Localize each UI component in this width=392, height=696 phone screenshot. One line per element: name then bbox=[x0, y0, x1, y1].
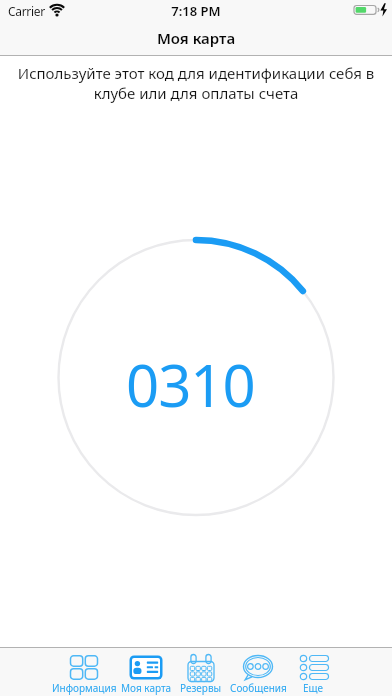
staticText: Используйте этот код для идентификации с… bbox=[0, 63, 392, 103]
button[interactable]: Информация bbox=[48, 651, 120, 695]
button[interactable]: Моя карта bbox=[110, 651, 182, 695]
staticText: Моя карта bbox=[0, 28, 392, 48]
staticText: Carrier bbox=[8, 3, 45, 19]
staticText: Моя карта bbox=[121, 681, 172, 695]
button[interactable]: Еще bbox=[277, 651, 349, 695]
staticText: Информация bbox=[52, 681, 117, 695]
staticText: Резервы bbox=[180, 681, 222, 695]
button[interactable]: Сообщения bbox=[222, 651, 294, 695]
staticText: Сообщения bbox=[230, 681, 287, 695]
staticText: Еще bbox=[303, 681, 324, 695]
staticText: 7:18 PM bbox=[0, 2, 392, 20]
staticText: 0310 bbox=[126, 345, 255, 423]
button[interactable]: Резервы bbox=[165, 651, 237, 695]
